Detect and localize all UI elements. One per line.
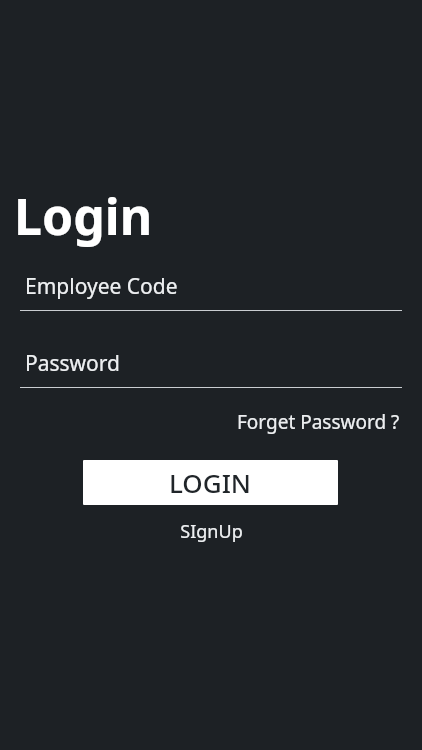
button[interactable]: LOGIN [83, 460, 338, 505]
staticText: Login [14, 182, 153, 250]
button[interactable]: SIgnUp [174, 516, 249, 547]
button[interactable]: Password [20, 349, 402, 388]
button[interactable]: Forget Password ? [235, 407, 402, 437]
staticText: SIgnUp [180, 519, 243, 544]
staticText: Password [25, 349, 120, 378]
staticText: Employee Code [25, 272, 178, 301]
button[interactable]: Employee Code [20, 272, 402, 311]
staticText: LOGIN [169, 465, 252, 500]
staticText: Forget Password ? [237, 409, 400, 435]
